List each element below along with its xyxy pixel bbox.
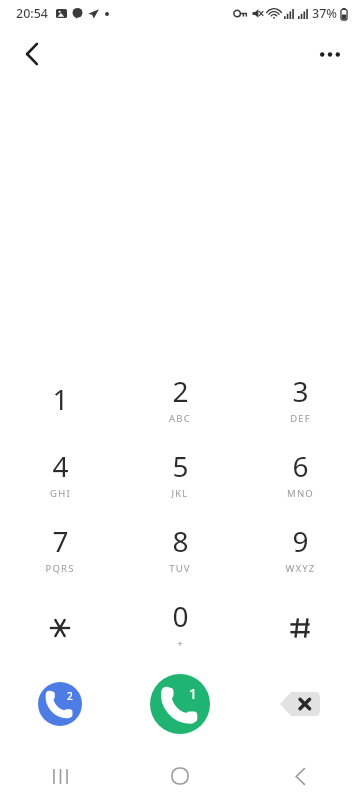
staticText: 1 <box>189 684 197 702</box>
button[interactable]: Recents <box>0 752 120 800</box>
staticText: 3 <box>292 372 309 410</box>
staticText: 2 <box>67 689 73 702</box>
staticText: JKL <box>171 487 189 500</box>
button[interactable]: 0 <box>120 590 240 665</box>
button[interactable]: More options <box>308 32 352 76</box>
staticText: 8 <box>172 522 189 560</box>
button[interactable]: 6 <box>240 440 360 515</box>
button[interactable]: 7 <box>0 515 120 590</box>
staticText: ABC <box>169 412 191 425</box>
button[interactable]: Home <box>120 752 240 800</box>
staticText: GHI <box>50 487 71 500</box>
staticText: 2 <box>172 372 189 410</box>
button[interactable]: 3 <box>240 365 360 440</box>
button[interactable]: Call with SIM 2 <box>38 682 82 726</box>
staticText: TUV <box>169 562 191 575</box>
staticText: + <box>177 637 184 650</box>
staticText: 5 <box>172 447 189 485</box>
button[interactable]: 8 <box>120 515 240 590</box>
staticText: 1 <box>52 380 69 418</box>
button[interactable]: Back <box>240 752 360 800</box>
staticText: DEF <box>290 412 311 425</box>
staticText: WXYZ <box>285 562 316 575</box>
staticText: 6 <box>292 447 309 485</box>
staticText: 0 <box>172 597 189 635</box>
button[interactable] <box>0 590 120 665</box>
button[interactable]: Backspace <box>274 686 326 722</box>
button[interactable]: 1 <box>0 365 120 440</box>
button[interactable]: 9 <box>240 515 360 590</box>
button[interactable]: 2 <box>120 365 240 440</box>
staticText: 37% <box>312 5 337 22</box>
button[interactable]: Back <box>8 30 56 78</box>
staticText: 9 <box>292 522 309 560</box>
button[interactable]: 5 <box>120 440 240 515</box>
button[interactable]: 4 <box>0 440 120 515</box>
staticText: 4 <box>52 447 69 485</box>
button[interactable] <box>240 590 360 665</box>
staticText: 7 <box>52 522 69 560</box>
staticText: PQRS <box>45 562 75 575</box>
button[interactable]: Call with SIM 1 <box>150 674 210 734</box>
staticText: 20:54 <box>16 5 49 22</box>
staticText: MNO <box>287 487 314 500</box>
